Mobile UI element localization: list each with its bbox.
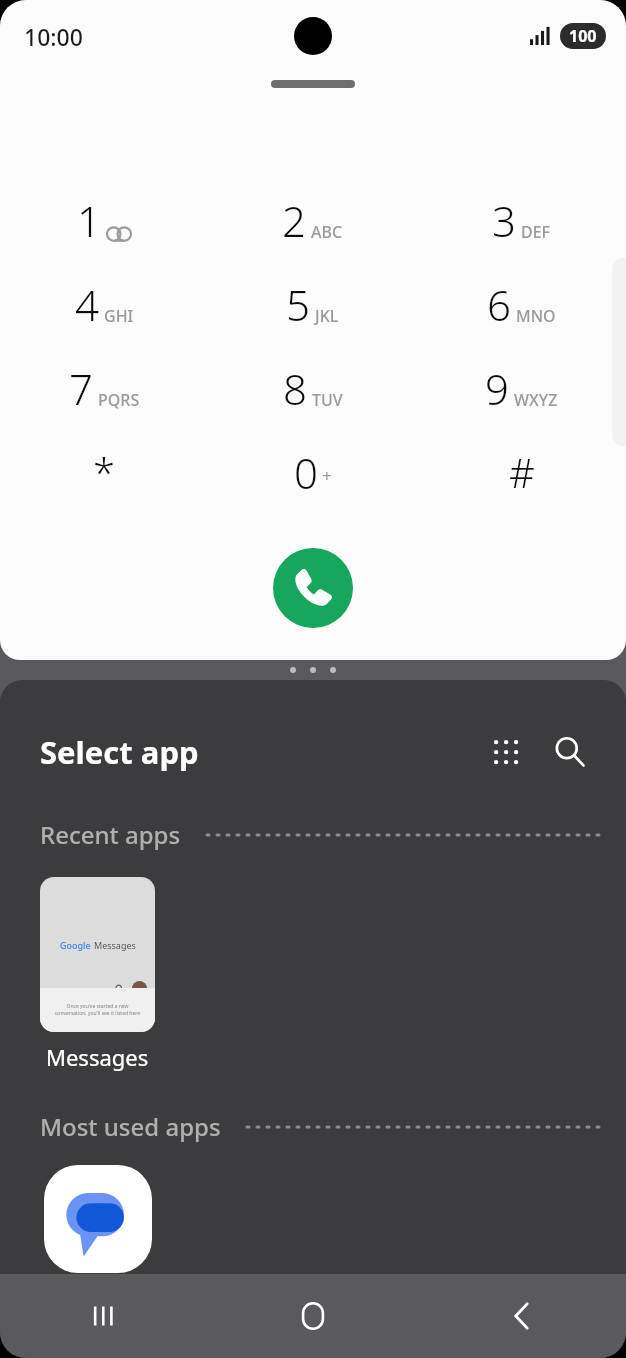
staticText: DEF [521,221,551,243]
staticText: PQRS [98,389,140,411]
staticText: 2 [282,192,306,249]
staticText: Most used apps [40,1110,221,1143]
button[interactable]: 3 [417,178,626,262]
staticText: Google [60,939,91,951]
button[interactable]: 5 [208,262,417,346]
button[interactable]: 6 [417,262,626,346]
staticText: TUV [312,389,343,411]
staticText: Messages [94,939,136,951]
staticText: Messages [46,1042,149,1072]
staticText: 5 [286,276,310,333]
staticText: 9 [485,360,509,417]
staticText: MNO [516,305,556,327]
staticText: * [93,445,116,499]
button[interactable]: All apps [482,728,530,776]
button[interactable]: 8 [208,346,417,430]
button[interactable]: Search [546,728,594,776]
button[interactable]: Messages [44,1165,152,1273]
button[interactable]: 1 [0,178,208,262]
button[interactable]: * [0,430,208,514]
staticText: JKL [315,305,339,327]
staticText: Recent apps [40,818,181,851]
staticText: + [322,464,332,487]
staticText: Once you've started a new conversation, … [40,1003,155,1017]
staticText: 7 [69,360,93,417]
staticText: 6 [487,276,511,333]
staticText: WXYZ [514,389,558,411]
staticText: 1 [77,192,101,249]
button[interactable]: Recent apps [0,1274,208,1358]
staticText: GHI [104,305,134,327]
staticText: 0 [294,444,318,501]
button[interactable]: 0 [208,430,417,514]
button[interactable]: Home [208,1274,417,1358]
button[interactable]: Back [417,1274,626,1358]
button[interactable]: Google [40,877,155,1072]
button[interactable]: Call [273,548,353,628]
staticText: 10:00 [24,21,83,52]
staticText: 4 [75,276,99,333]
button[interactable]: 2 [208,178,417,262]
staticText: Select app [40,731,199,773]
button[interactable]: 4 [0,262,208,346]
button[interactable]: # [417,430,626,514]
staticText: # [509,445,535,499]
staticText: 3 [492,192,516,249]
staticText: 8 [283,360,307,417]
staticText: ABC [311,221,343,243]
button[interactable]: 7 [0,346,208,430]
staticText: 100 [569,25,597,47]
button[interactable]: 9 [417,346,626,430]
